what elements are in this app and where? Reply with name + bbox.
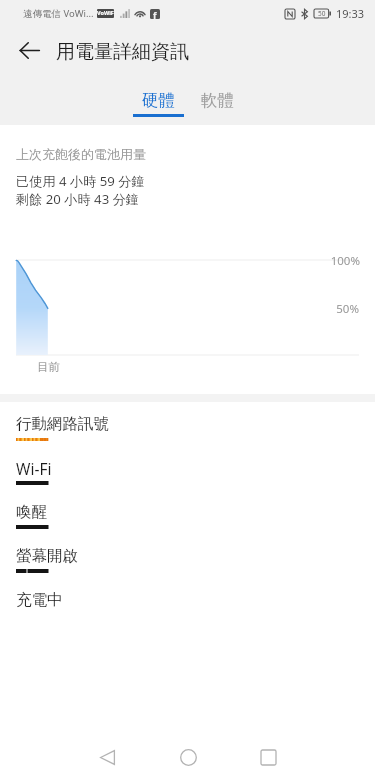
button[interactable]: 螢幕開啟: [0, 545, 375, 589]
staticText: VoWiFi: [97, 9, 114, 18]
button[interactable]: Recents: [244, 733, 292, 780]
button[interactable]: 喚醒: [0, 501, 375, 545]
staticText: 剩餘 20 小時 43 分鐘: [16, 190, 140, 208]
staticText: 50: [318, 9, 326, 18]
staticText: 充電中: [16, 590, 63, 610]
staticText: 螢幕開啟: [16, 546, 78, 566]
staticText: 100%: [306, 253, 360, 269]
staticText: 上次充飽後的電池用量: [16, 146, 146, 162]
staticText: Wi-Fi: [16, 458, 52, 479]
staticText: 硬體: [142, 90, 175, 111]
button[interactable]: Wi-Fi: [0, 457, 375, 501]
button[interactable]: Home: [164, 733, 212, 780]
staticText: 19:33: [336, 6, 365, 21]
button[interactable]: Back: [8, 29, 50, 71]
staticText: 用電量詳細資訊: [56, 40, 189, 64]
staticText: 喚醒: [16, 502, 47, 522]
staticText: 50%: [306, 301, 359, 317]
button[interactable]: 充電中: [0, 589, 375, 633]
staticText: 目前: [37, 360, 60, 374]
staticText: 已使用 4 小時 59 分鐘: [16, 172, 145, 190]
button[interactable]: 硬體: [130, 82, 187, 119]
staticText: 軟體: [201, 90, 234, 111]
button[interactable]: Back: [83, 733, 131, 780]
button[interactable]: 行動網路訊號: [0, 413, 375, 457]
button[interactable]: 軟體: [189, 82, 246, 119]
staticText: 行動網路訊號: [16, 414, 109, 434]
staticText: f: [153, 9, 157, 19]
staticText: 遠傳電信 VoWi...: [23, 7, 94, 20]
